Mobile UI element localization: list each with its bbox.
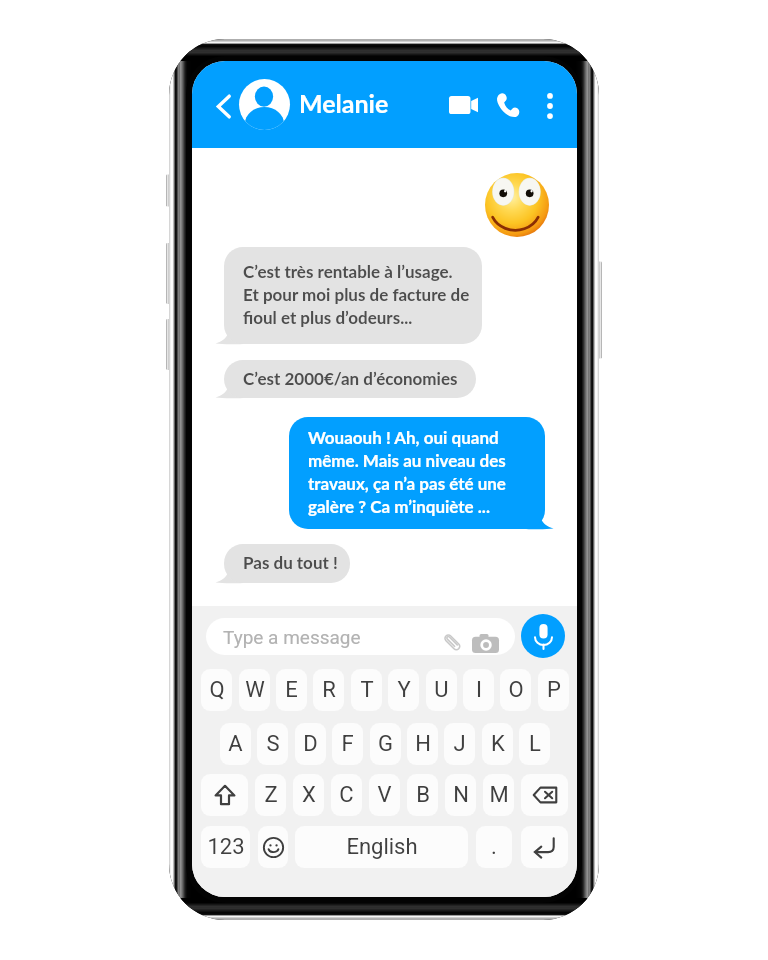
button[interactable]: W [239,669,270,711]
button[interactable]: P [538,669,569,711]
button[interactable]: O [500,669,531,711]
button[interactable]: F [332,723,363,765]
button[interactable]: J [444,723,475,765]
staticText: X [302,782,316,808]
button[interactable]: Q [201,669,232,711]
staticText: Melanie [299,88,389,118]
button[interactable]: D [295,723,326,765]
button[interactable]: M [483,774,514,816]
button[interactable]: Attach file [438,628,466,655]
button[interactable]: . [476,826,512,868]
button[interactable]: V [369,774,400,816]
button[interactable]: T [351,669,382,711]
staticText: Z [264,782,278,808]
staticText: S [266,731,280,757]
button[interactable]: 123 [201,826,250,868]
staticText: W [245,677,265,703]
staticText: P [547,677,561,703]
button[interactable]: H [407,723,438,765]
button[interactable]: C’est 2000€/an d’économies [224,360,476,398]
staticText: F [341,731,354,757]
staticText: Q [209,677,225,703]
staticText: N [453,782,469,808]
button[interactable]: C [331,774,362,816]
button[interactable]: B [407,774,438,816]
staticText: K [491,731,505,757]
button[interactable]: G [370,723,401,765]
button[interactable]: Video call [449,96,478,114]
button[interactable]: Pas du tout ! [224,544,350,583]
staticText: 123 [207,834,245,860]
staticText: C’est 2000€/an d’économies [243,368,458,388]
button[interactable]: Y [388,669,419,711]
staticText: D [303,731,318,757]
button[interactable] [258,826,288,868]
staticText: O [508,677,524,703]
button[interactable] [521,826,568,868]
button[interactable] [521,774,568,816]
button[interactable]: Contact avatar [239,79,290,130]
button[interactable]: Wouaouh ! Ah, oui quand même. Mais au ni… [289,417,545,529]
button[interactable]: R [313,669,344,711]
button[interactable]: Call [497,92,520,117]
staticText: English [346,834,418,860]
staticText: M [489,782,509,808]
staticText: . [491,834,497,860]
button[interactable]: U [426,669,457,711]
staticText: L [529,731,541,757]
staticText: I [476,677,482,703]
button[interactable]: S [257,723,288,765]
staticText: G [378,731,393,757]
staticText: J [453,731,466,757]
staticText: R [322,677,336,703]
button[interactable] [201,774,248,816]
button[interactable]: N [445,774,476,816]
button[interactable]: Camera [470,628,500,655]
button[interactable]: X [293,774,324,816]
button[interactable]: L [519,723,550,765]
staticText: Pas du tout ! [243,552,338,572]
staticText: C [339,782,354,808]
staticText: C’est très rentable à l’usage. Et pour m… [243,261,470,328]
staticText: E [285,677,298,703]
staticText: U [434,677,449,703]
staticText: Wouaouh ! Ah, oui quand même. Mais au ni… [308,427,506,517]
button[interactable]: More options [547,93,553,119]
button[interactable]: C’est très rentable à l’usage. Et pour m… [224,247,482,344]
button[interactable]: A [220,723,251,765]
staticText: V [377,782,392,808]
staticText: Y [397,677,411,703]
staticText: H [415,731,431,757]
button[interactable]: Type a message [206,618,515,655]
button[interactable]: English [295,826,468,868]
staticText: A [228,731,243,757]
staticText: T [360,677,374,703]
button[interactable]: I [463,669,494,711]
button[interactable]: K [482,723,513,765]
button[interactable]: E [276,669,307,711]
staticText: Type a message [223,626,361,648]
button[interactable]: Z [255,774,286,816]
button[interactable]: Voice message [521,614,565,658]
button[interactable]: Back [205,88,241,124]
staticText: B [416,782,430,808]
